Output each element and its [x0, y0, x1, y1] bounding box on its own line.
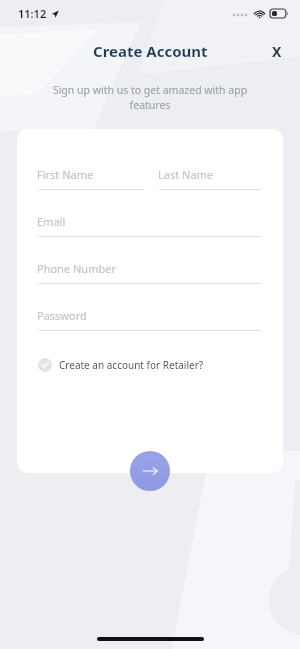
button[interactable]: Email	[37, 214, 262, 237]
staticText: Sign up with us to get amazed with app f…	[42, 83, 258, 112]
button[interactable]: Continue	[130, 451, 170, 491]
staticText: Last Name	[158, 167, 214, 182]
button[interactable]: Create an account for Retailer?	[37, 356, 205, 374]
staticText: First Name	[37, 167, 94, 182]
button[interactable]: Password	[37, 308, 262, 331]
button[interactable]: Last Name	[158, 167, 262, 190]
staticText: Email	[37, 214, 66, 229]
staticText: X	[272, 42, 282, 61]
staticText: 11:12	[18, 6, 47, 21]
staticText: Phone Number	[37, 261, 116, 276]
staticText: Create an account for Retailer?	[59, 358, 204, 372]
button[interactable]: Phone Number	[37, 261, 262, 284]
button[interactable]: Close	[262, 36, 292, 66]
button[interactable]: First Name	[37, 167, 145, 190]
staticText: Password	[37, 308, 87, 323]
staticText: Create Account	[93, 41, 208, 61]
